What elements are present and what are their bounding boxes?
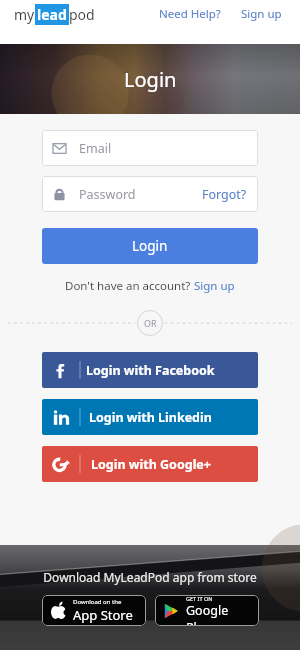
staticText: Google Play <box>186 602 252 626</box>
button[interactable]: Login with Google+ <box>42 446 258 482</box>
staticText: Login with Google+ <box>91 456 211 473</box>
staticText: Password <box>79 186 136 203</box>
button[interactable]: Sign up <box>237 0 286 28</box>
staticText: GET IT ON <box>186 595 213 602</box>
button[interactable]: Download on the App Store <box>42 595 146 626</box>
button[interactable]: Login <box>42 228 258 264</box>
staticText: Login <box>124 66 177 93</box>
button[interactable]: MyLeadPod home <box>14 4 95 25</box>
staticText: Sign up <box>194 278 235 294</box>
button[interactable]: Don't have an account? <box>65 278 235 294</box>
staticText: Login <box>132 237 168 255</box>
staticText: Login with Facebook <box>86 362 215 379</box>
staticText: lead <box>37 5 67 24</box>
staticText: Download MyLeadPod app from store <box>43 569 257 585</box>
button[interactable]: Password <box>42 176 258 212</box>
staticText: Forgot? <box>202 186 247 203</box>
staticText: Login with Linkedin <box>89 409 212 426</box>
staticText: OR <box>144 317 157 329</box>
button[interactable]: Login with Facebook <box>42 352 258 388</box>
staticText: Need Help? <box>159 6 221 22</box>
staticText: Sign up <box>241 6 282 22</box>
button[interactable]: Login with Linkedin <box>42 399 258 435</box>
button[interactable]: Need Help? <box>155 0 225 28</box>
staticText: Don't have an account? <box>65 278 194 294</box>
staticText: Download on the <box>73 598 122 606</box>
staticText: App Store <box>73 606 133 624</box>
button[interactable]: Get it on Google Play <box>155 595 259 626</box>
staticText: my <box>14 5 35 24</box>
staticText: pod <box>69 5 95 24</box>
staticText: Email <box>79 140 112 157</box>
button[interactable]: Forgot? <box>202 186 247 203</box>
button[interactable]: Email <box>42 130 258 166</box>
